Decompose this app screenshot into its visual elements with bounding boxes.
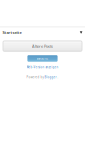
button[interactable]: Startseite (27, 55, 57, 62)
button[interactable]: Ältere Posts (3, 41, 82, 51)
staticText: Startseite (3, 30, 22, 35)
button[interactable]: Blogger (44, 75, 56, 79)
staticText: Ältere Posts (32, 43, 53, 49)
staticText: Blogger (44, 75, 56, 79)
staticText: Web-Version anzeigen (26, 65, 58, 69)
button[interactable]: Web-Version anzeigen (0, 65, 85, 69)
staticText: Powered by (26, 75, 43, 79)
button[interactable]: Startseite (0, 27, 85, 38)
staticText: Startseite (36, 57, 48, 60)
